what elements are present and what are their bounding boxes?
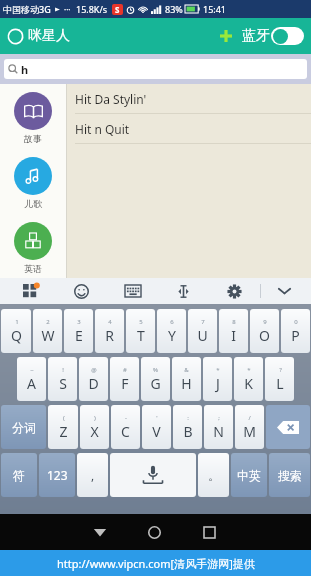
button[interactable]: !: [48, 357, 77, 401]
staticText: *: [247, 366, 251, 374]
staticText: -: [125, 414, 127, 422]
staticText: V: [152, 422, 161, 441]
staticText: 4: [108, 318, 112, 326]
staticText: 0: [294, 318, 298, 326]
button[interactable]: 1: [1, 309, 31, 353]
button[interactable]: Hide keyboard: [261, 278, 307, 304]
staticText: Y: [168, 326, 176, 345]
button[interactable]: *: [234, 357, 263, 401]
button[interactable]: /: [235, 405, 264, 449]
button[interactable]: 蓝牙: [242, 27, 304, 45]
staticText: E: [75, 326, 83, 345]
button[interactable]: ,: [77, 453, 108, 497]
button[interactable]: Back: [73, 514, 127, 550]
button[interactable]: Space: [110, 453, 196, 497]
button[interactable]: 9: [250, 309, 279, 353]
button[interactable]: ~: [17, 357, 46, 401]
button[interactable]: 6: [157, 309, 186, 353]
staticText: D: [88, 374, 99, 393]
button[interactable]: Home: [127, 514, 182, 550]
staticText: T: [137, 326, 145, 345]
staticText: X: [90, 422, 99, 441]
staticText: ~: [30, 366, 34, 374]
button[interactable]: (: [48, 405, 78, 449]
staticText: 中英: [237, 468, 261, 483]
button[interactable]: 儿歌: [10, 156, 56, 210]
staticText: 分词: [12, 420, 36, 435]
button[interactable]: Emoji: [56, 278, 107, 304]
button[interactable]: Apps: [4, 278, 56, 304]
staticText: 搜索: [278, 468, 302, 483]
button[interactable]: Hit Da Stylin': [67, 84, 311, 114]
button[interactable]: 8: [219, 309, 248, 353]
staticText: N: [213, 422, 224, 441]
staticText: ,: [91, 467, 95, 483]
staticText: /: [248, 414, 251, 422]
staticText: :: [187, 414, 189, 422]
button[interactable]: ': [142, 405, 171, 449]
staticText: ): [94, 414, 96, 422]
staticText: 6: [170, 318, 174, 326]
staticText: H: [181, 374, 192, 393]
button[interactable]: 咪星人: [7, 27, 70, 45]
button[interactable]: 3: [64, 309, 93, 353]
staticText: Q: [11, 326, 22, 345]
staticText: 符: [13, 468, 25, 483]
button[interactable]: %: [141, 357, 170, 401]
staticText: 中国移动3G: [3, 3, 51, 15]
button[interactable]: Settings: [209, 278, 260, 304]
staticText: ?: [279, 366, 282, 374]
staticText: 英语: [24, 263, 42, 274]
button[interactable]: ;: [204, 405, 233, 449]
button[interactable]: Move cursor: [158, 278, 209, 304]
staticText: 9: [263, 318, 267, 326]
staticText: 3: [77, 318, 81, 326]
button[interactable]: 分词: [1, 405, 46, 449]
staticText: 蓝牙: [242, 27, 270, 45]
button[interactable]: Add: [216, 26, 236, 46]
button[interactable]: 故事: [10, 91, 56, 145]
staticText: S: [115, 4, 120, 15]
staticText: 7: [201, 318, 205, 326]
staticText: 故事: [24, 133, 42, 144]
staticText: Hit Da Stylin': [75, 91, 147, 107]
staticText: J: [216, 374, 220, 393]
button[interactable]: -: [111, 405, 140, 449]
button[interactable]: Hit n Quit: [67, 114, 311, 144]
staticText: B: [183, 422, 193, 441]
button[interactable]: &: [172, 357, 201, 401]
button[interactable]: 中英: [231, 453, 267, 497]
button[interactable]: Recent apps: [182, 514, 237, 550]
staticText: O: [259, 326, 270, 345]
button[interactable]: Backspace: [266, 405, 310, 449]
staticText: Hit n Quit: [75, 121, 130, 137]
staticText: @: [91, 366, 97, 374]
button[interactable]: 搜索: [269, 453, 310, 497]
staticText: ;: [218, 414, 220, 422]
staticText: M: [243, 422, 256, 441]
staticText: 15:41: [203, 3, 227, 15]
staticText: 。: [208, 468, 220, 483]
button[interactable]: ): [80, 405, 109, 449]
button[interactable]: *: [203, 357, 232, 401]
button[interactable]: @: [79, 357, 108, 401]
staticText: L: [276, 374, 284, 393]
button[interactable]: 4: [95, 309, 124, 353]
staticText: 1: [15, 318, 19, 326]
button[interactable]: 7: [188, 309, 217, 353]
button[interactable]: #: [110, 357, 139, 401]
button[interactable]: 英语: [10, 221, 56, 275]
button[interactable]: 2: [33, 309, 62, 353]
staticText: G: [150, 374, 161, 393]
button[interactable]: 。: [198, 453, 229, 497]
button[interactable]: h: [4, 59, 307, 79]
button[interactable]: ?: [265, 357, 294, 401]
button[interactable]: Keyboard layout: [107, 278, 158, 304]
button[interactable]: 5: [126, 309, 155, 353]
button[interactable]: 0: [281, 309, 310, 353]
button[interactable]: :: [173, 405, 202, 449]
staticText: C: [121, 422, 130, 441]
staticText: http://www.vipcn.com[清风手游网]提供: [57, 556, 255, 571]
button[interactable]: 123: [39, 453, 75, 497]
button[interactable]: 符: [1, 453, 37, 497]
